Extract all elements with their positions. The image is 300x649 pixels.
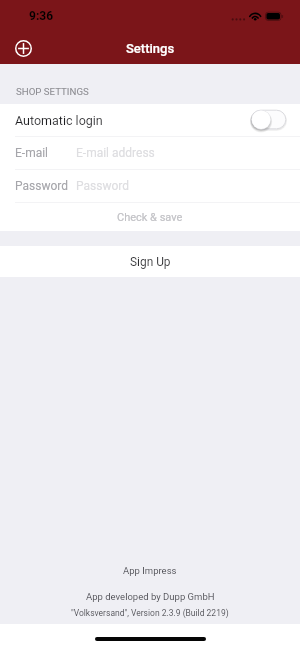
button[interactable]: Add [7, 32, 39, 64]
button[interactable]: App Impress [123, 565, 177, 576]
staticText: Password [76, 179, 130, 193]
staticText: E-mail [15, 146, 49, 160]
button[interactable]: E-mail [0, 137, 300, 169]
button[interactable]: Automatic login [250, 109, 287, 131]
button[interactable]: Password [0, 170, 300, 202]
staticText: SHOP SETTINGS [16, 86, 89, 97]
staticText: Sign Up [130, 255, 171, 269]
button[interactable]: Sign Up [0, 246, 300, 277]
staticText: Automatic login [15, 113, 103, 128]
staticText: Check & save [117, 211, 183, 224]
staticText: "Volksversand", Version 2.3.9 (Build 221… [71, 608, 229, 618]
button[interactable]: Check & save [0, 203, 300, 231]
staticText: E-mail address [76, 146, 155, 160]
staticText: 9:36 [29, 9, 54, 23]
staticText: Settings [126, 41, 175, 56]
button[interactable]: Automatic login [0, 104, 300, 136]
staticText: App developed by Dupp GmbH [86, 591, 215, 602]
staticText: Password [15, 179, 69, 193]
